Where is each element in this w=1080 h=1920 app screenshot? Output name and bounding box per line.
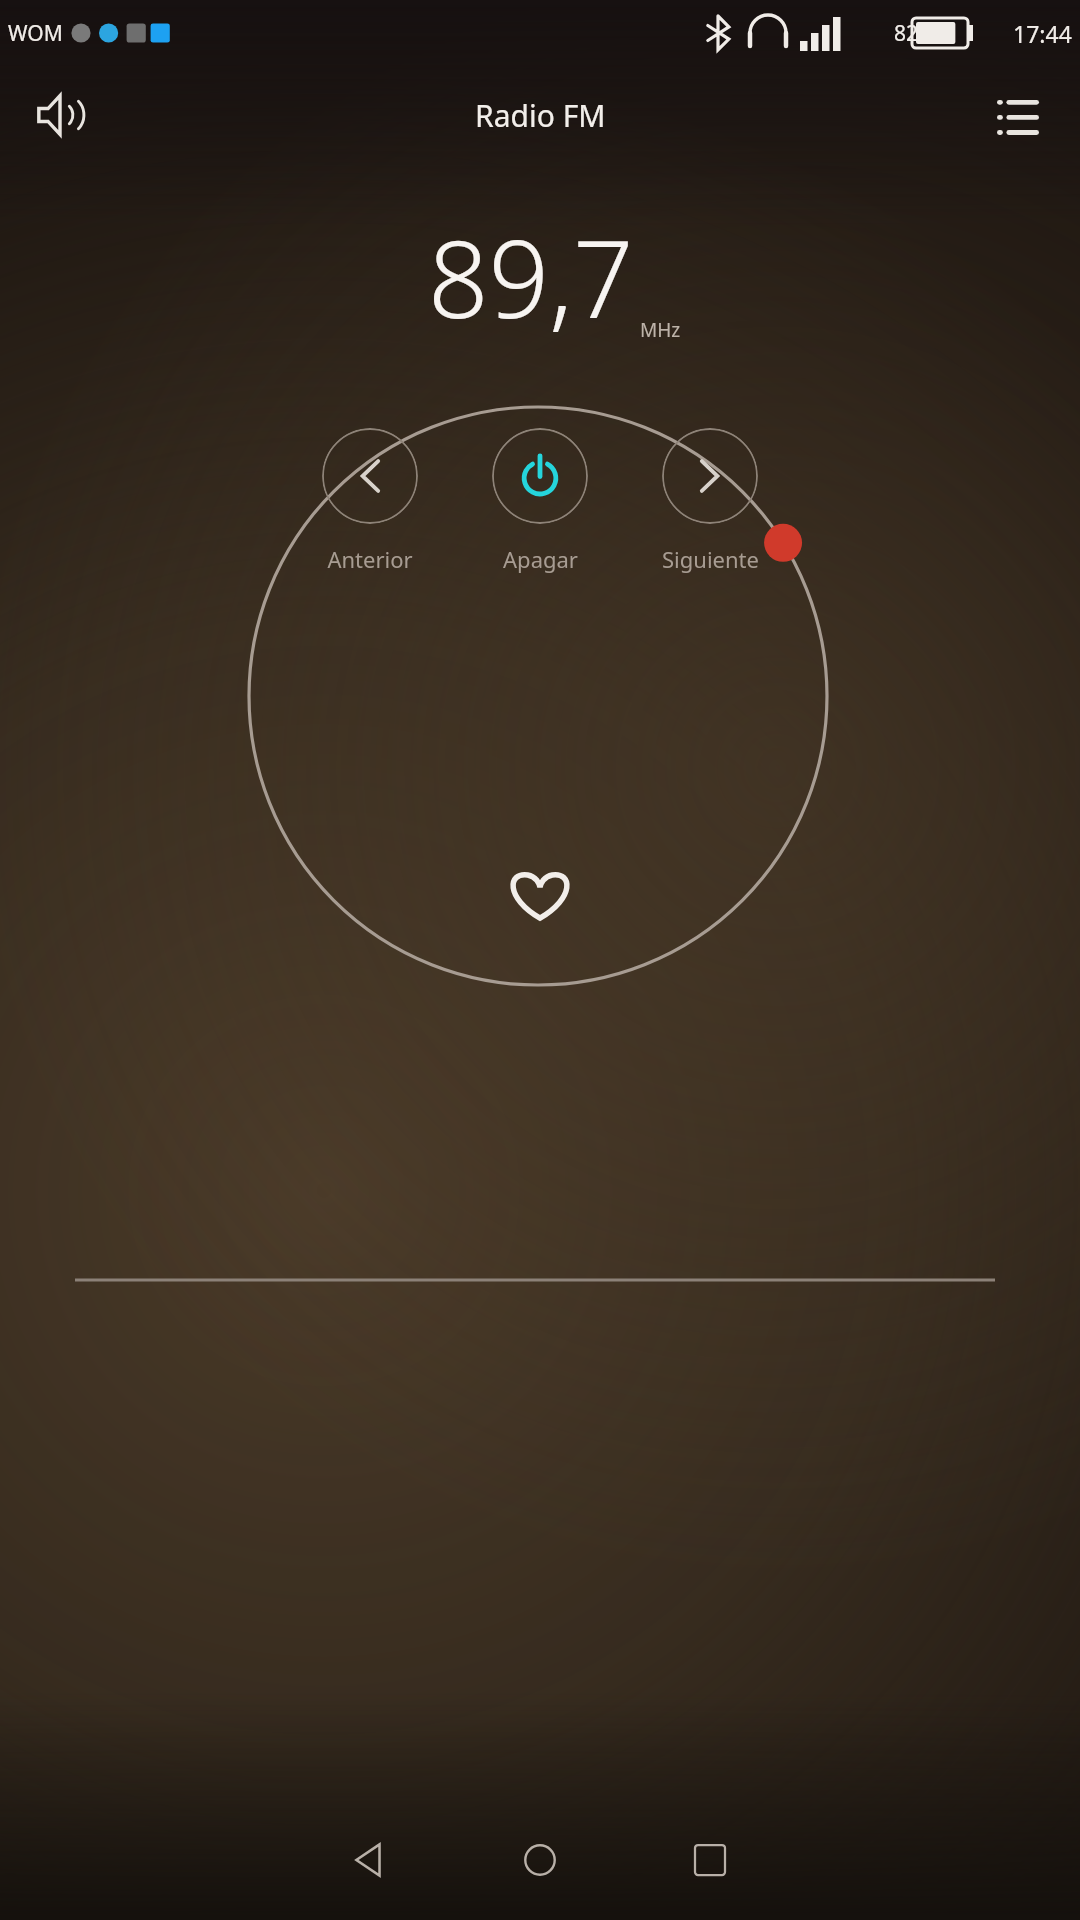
staticText: WOM: [8, 19, 63, 48]
staticText: Radio FM: [475, 95, 606, 136]
staticText: Apagar: [503, 544, 578, 574]
staticText: Siguiente: [662, 544, 759, 574]
staticText: 89,7: [428, 205, 634, 349]
staticText: MHz: [640, 317, 681, 343]
button[interactable]: Back: [315, 1805, 425, 1915]
button[interactable]: Siguiente: [642, 428, 778, 574]
staticText: 82 %: [894, 19, 941, 48]
button[interactable]: Recent apps: [655, 1805, 765, 1915]
button[interactable]: Apagar: [472, 428, 608, 574]
button[interactable]: Home: [485, 1805, 595, 1915]
button[interactable]: Station list: [978, 75, 1058, 155]
staticText: 17:44: [1013, 18, 1072, 49]
staticText: Anterior: [327, 544, 413, 574]
button[interactable]: Volume: [20, 75, 100, 155]
button[interactable]: Anterior: [302, 428, 438, 574]
